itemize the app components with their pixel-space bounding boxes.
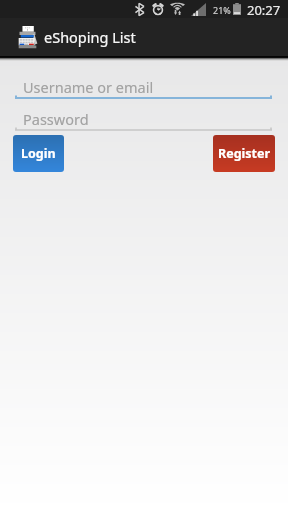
- staticText: 21%: [213, 4, 231, 16]
- staticText: Login: [21, 145, 56, 162]
- staticText: Username or email: [23, 77, 154, 95]
- button[interactable]: eShoping List app icon: [0, 18, 288, 56]
- button[interactable]: Login: [13, 135, 64, 172]
- staticText: eShoping List: [44, 27, 136, 47]
- staticText: Password: [23, 109, 89, 127]
- staticText: 20:27: [247, 1, 281, 19]
- staticText: Register: [218, 145, 271, 162]
- button[interactable]: Password: [15, 108, 272, 132]
- button[interactable]: Register: [213, 135, 275, 172]
- other: eShoping List app icon: [17, 25, 38, 50]
- button[interactable]: Username or email: [15, 76, 272, 100]
